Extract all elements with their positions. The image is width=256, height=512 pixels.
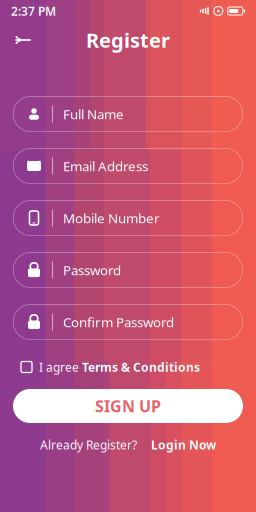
button[interactable]: Login Now: [137, 433, 216, 457]
button[interactable]: Password: [13, 252, 243, 288]
staticText: Password: [63, 261, 121, 279]
staticText: Email Address: [63, 157, 148, 175]
staticText: Terms & Conditions: [82, 359, 200, 375]
staticText: Full Name: [63, 105, 124, 123]
staticText: Confirm Password: [63, 313, 174, 331]
button[interactable]: Email Address: [13, 148, 243, 184]
staticText: Already Register?: [40, 437, 137, 453]
staticText: Register: [86, 27, 170, 53]
staticText: 2:37 PM: [11, 3, 56, 19]
staticText: I agree: [39, 359, 79, 375]
button[interactable]: Confirm Password: [13, 304, 243, 340]
staticText: Mobile Number: [63, 209, 160, 227]
staticText: Login Now: [151, 437, 216, 453]
button[interactable]: I agree: [21, 357, 235, 377]
button[interactable]: SIGN UP: [13, 389, 243, 423]
staticText: SIGN UP: [95, 395, 161, 417]
button[interactable]: Back: [6, 23, 40, 57]
button[interactable]: Full Name: [13, 96, 243, 132]
button[interactable]: Mobile Number: [13, 200, 243, 236]
